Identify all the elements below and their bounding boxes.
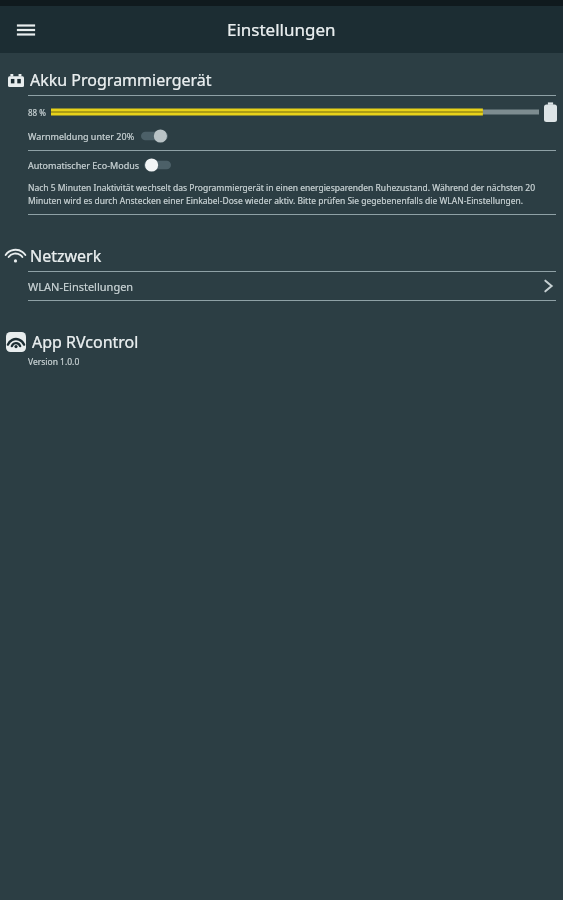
staticText: Akku Programmiergerät — [30, 69, 212, 91]
staticText: Warnmeldung unter 20% — [28, 130, 135, 142]
staticText: WLAN-Einstellungen — [28, 279, 544, 294]
button[interactable]: WLAN-Einstellungen — [28, 272, 553, 300]
button[interactable]: Menu — [10, 14, 42, 46]
button[interactable]: Warnmeldung unter 20% — [28, 125, 563, 147]
staticText: Einstellungen — [227, 18, 336, 41]
staticText: Version 1.0.0 — [28, 356, 80, 368]
staticText: App RVcontrol — [32, 331, 139, 353]
staticText: Nach 5 Minuten Inaktivität wechselt das … — [28, 182, 553, 207]
staticText: 88 % — [28, 107, 46, 118]
button[interactable]: Automatischer Eco-Modus — [28, 154, 563, 176]
staticText: Automatischer Eco-Modus — [28, 159, 140, 171]
staticText: Netzwerk — [30, 245, 102, 267]
